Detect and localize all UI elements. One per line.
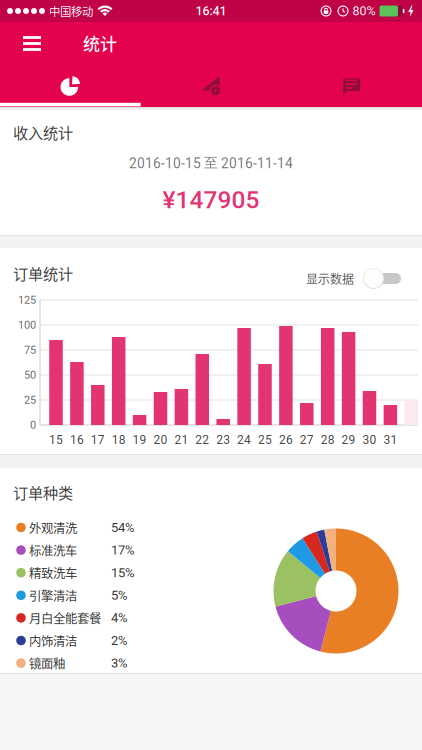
staticText: 显示数据: [306, 270, 354, 287]
staticText: 25: [24, 394, 36, 406]
staticText: 80%: [352, 4, 375, 18]
staticText: 0: [30, 419, 36, 431]
staticText: 外观清洗: [29, 518, 77, 536]
staticText: 50: [24, 369, 36, 381]
staticText: ¥147905: [162, 186, 259, 214]
staticText: 16:41: [195, 4, 226, 18]
staticText: 引擎清洁: [29, 586, 77, 604]
button[interactable]: 趋势: [141, 67, 281, 105]
staticText: 内饰清洁: [29, 631, 77, 649]
staticText: 100: [18, 319, 36, 331]
staticText: 15%: [111, 565, 135, 580]
staticText: 2%: [111, 633, 128, 648]
staticText: 18: [112, 433, 126, 447]
staticText: 月白全能套餐: [29, 609, 101, 627]
staticText: 29: [342, 433, 356, 447]
staticText: 30: [362, 433, 376, 447]
staticText: 15: [49, 433, 63, 447]
staticText: 19: [133, 433, 147, 447]
staticText: 3%: [111, 655, 128, 671]
staticText: 5%: [111, 588, 128, 603]
staticText: 26: [279, 433, 293, 447]
staticText: 订单统计: [13, 262, 73, 284]
button[interactable]: 消息: [281, 67, 422, 105]
staticText: 标准洗车: [29, 541, 77, 559]
staticText: 125: [18, 294, 36, 306]
staticText: 28: [321, 433, 335, 447]
staticText: 中国移动: [49, 3, 93, 19]
staticText: 16: [70, 433, 84, 447]
staticText: 75: [24, 344, 36, 356]
staticText: 镜面釉: [29, 654, 65, 672]
button[interactable]: 统计图表: [0, 67, 141, 105]
button[interactable]: Menu: [10, 22, 54, 65]
staticText: 17: [91, 433, 105, 447]
staticText: 22: [195, 433, 209, 447]
staticText: 收入统计: [13, 121, 73, 143]
staticText: 21: [174, 433, 188, 447]
staticText: 统计: [83, 31, 117, 55]
staticText: 24: [237, 433, 251, 447]
staticText: 20: [153, 433, 167, 447]
staticText: 订单种类: [13, 481, 73, 503]
button[interactable]: 显示数据: [363, 266, 405, 290]
staticText: 31: [383, 433, 397, 447]
staticText: 25: [258, 433, 272, 447]
staticText: 精致洗车: [29, 564, 77, 582]
staticText: 17%: [111, 542, 135, 558]
staticText: 54%: [111, 520, 135, 535]
staticText: 23: [216, 433, 230, 447]
staticText: 4%: [111, 610, 128, 625]
staticText: 27: [300, 433, 314, 447]
staticText: 2016-10-15 至 2016-11-14: [129, 154, 293, 172]
